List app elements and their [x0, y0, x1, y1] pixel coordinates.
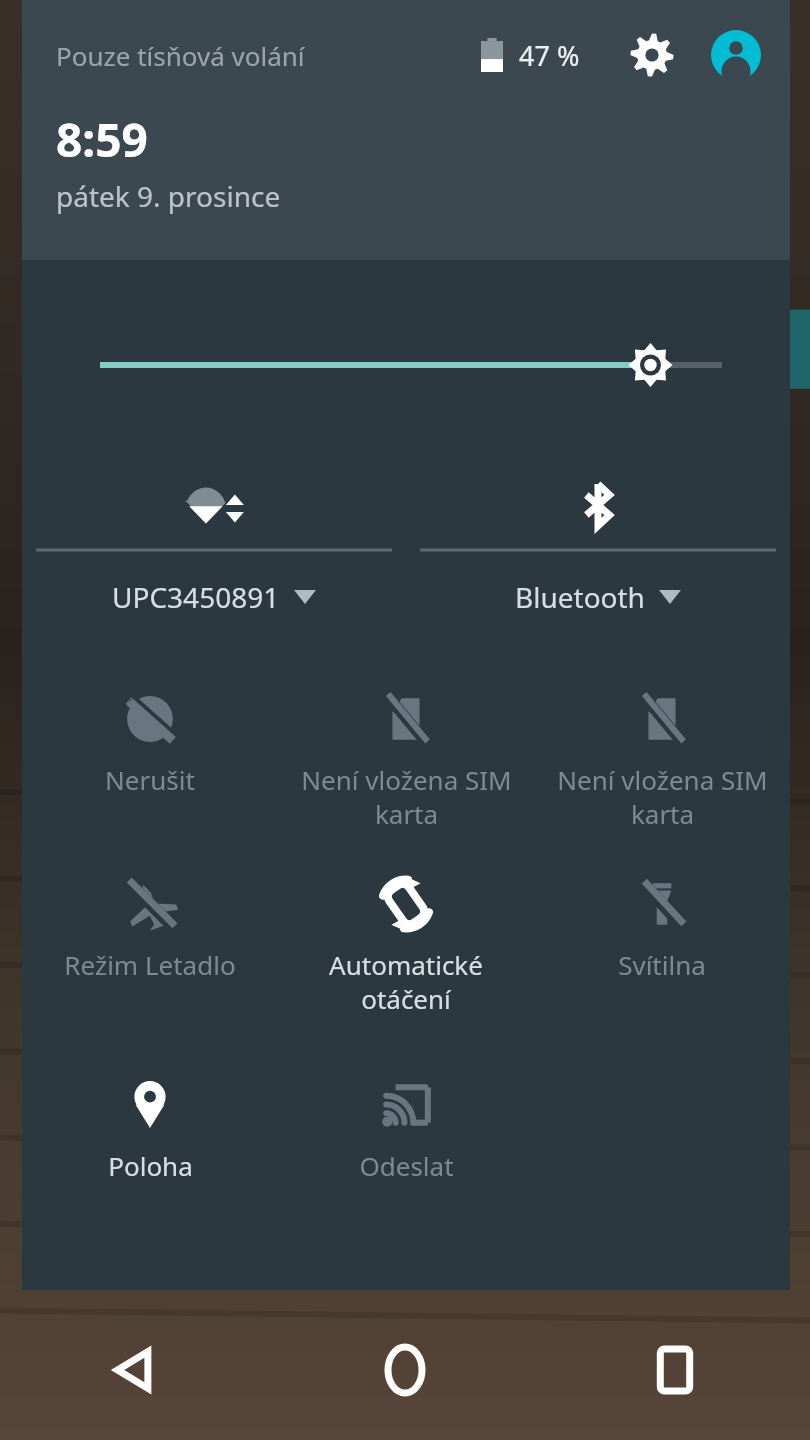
button[interactable]: Nerušit [22, 676, 278, 797]
button[interactable]: Bluetooth [406, 466, 790, 616]
staticText: Není vložena SIM karta [301, 762, 512, 831]
button[interactable]: Home [270, 1300, 540, 1440]
staticText: Automatické otáčení [286, 947, 526, 1016]
button[interactable]: Recents [540, 1300, 810, 1440]
button[interactable]: Automatické otáčení [278, 861, 534, 1016]
staticText: pátek 9. prosince [56, 177, 281, 215]
button[interactable]: UPC3450891 [22, 466, 406, 616]
staticText: Není vložena SIM karta [557, 762, 768, 831]
button[interactable]: Brightness [22, 330, 790, 400]
staticText: Nerušit [105, 762, 195, 797]
staticText: 47 % [519, 37, 580, 74]
staticText: Poloha [108, 1148, 193, 1183]
button[interactable]: Settings [624, 27, 680, 83]
staticText: 8:59 [56, 108, 148, 171]
staticText: Svítilna [618, 947, 706, 982]
button[interactable]: Režim Letadlo [22, 861, 278, 982]
button[interactable]: Back [0, 1300, 270, 1440]
staticText: Bluetooth [515, 578, 645, 616]
button[interactable]: Poloha [22, 1062, 278, 1183]
button[interactable]: Není vložena SIM karta [278, 676, 534, 831]
button[interactable]: Není vložena SIM karta [534, 676, 790, 831]
staticText: Odeslat [359, 1148, 454, 1183]
button[interactable]: Svítilna [534, 861, 790, 982]
button[interactable]: Odeslat [278, 1062, 534, 1183]
button[interactable]: User [708, 27, 764, 83]
staticText: Pouze tísňová volání [56, 38, 305, 73]
staticText: UPC3450891 [112, 578, 280, 616]
staticText: Režim Letadlo [64, 947, 236, 982]
